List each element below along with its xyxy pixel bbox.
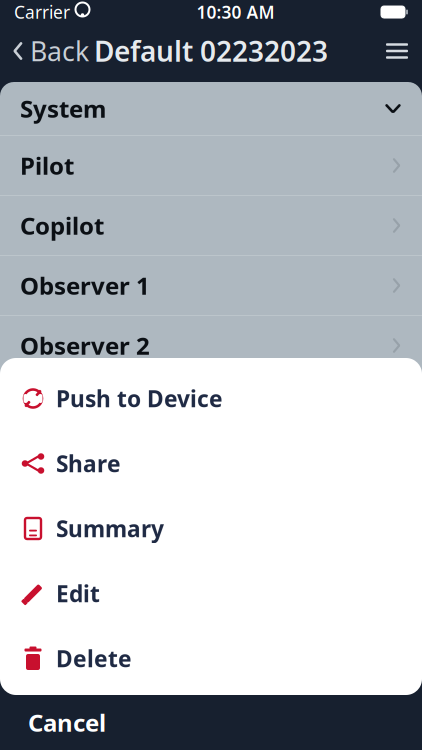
- button[interactable]: Cancel: [0, 695, 422, 750]
- button[interactable]: Back: [0, 28, 101, 74]
- staticText: 10:30 AM: [196, 0, 274, 23]
- button[interactable]: Pilot: [0, 136, 422, 195]
- button[interactable]: System: [0, 82, 422, 135]
- staticText: Push to Device: [56, 383, 223, 413]
- button[interactable]: Observer 2: [0, 316, 422, 375]
- button[interactable]: Menu: [372, 28, 422, 74]
- button[interactable]: Observer 1: [0, 256, 422, 315]
- button[interactable]: Push to Device: [0, 366, 422, 431]
- staticText: Default 02232023: [94, 32, 328, 70]
- staticText: Summary: [56, 513, 164, 543]
- staticText: Cancel: [28, 707, 106, 738]
- staticText: Back: [30, 33, 89, 69]
- staticText: Observer 3: [20, 390, 150, 421]
- staticText: Copilot: [20, 210, 104, 241]
- staticText: Observer 1: [20, 270, 150, 301]
- staticText: Observer 2: [20, 330, 150, 361]
- staticText: Carrier: [14, 0, 70, 23]
- button[interactable]: Observer 3: [0, 376, 422, 435]
- staticText: Pilot: [20, 150, 74, 181]
- staticText: Edit: [56, 578, 100, 608]
- button[interactable]: Summary: [0, 496, 422, 561]
- button[interactable]: Share: [0, 431, 422, 496]
- button[interactable]: Edit: [0, 561, 422, 626]
- staticText: System: [20, 93, 106, 124]
- button[interactable]: Copilot: [0, 196, 422, 255]
- staticText: Delete: [56, 643, 132, 673]
- staticText: Share: [56, 448, 121, 478]
- button[interactable]: Delete: [0, 626, 422, 691]
